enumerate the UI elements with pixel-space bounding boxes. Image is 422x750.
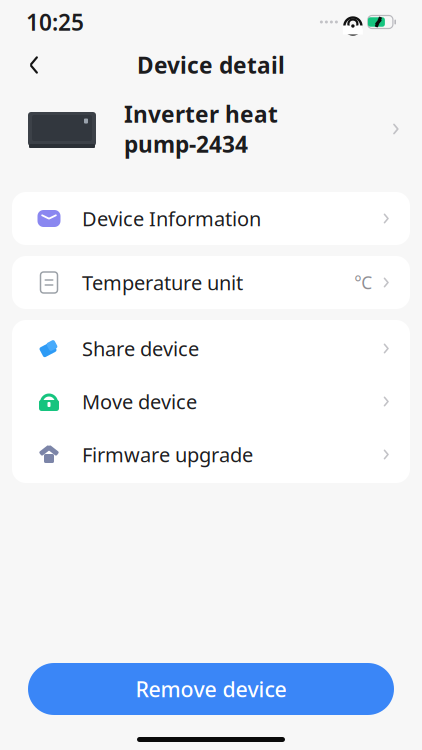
button[interactable]: Remove device (28, 663, 394, 715)
button[interactable]: Share device (12, 322, 410, 375)
staticText: Remove device (135, 675, 286, 703)
staticText: Share device (82, 335, 199, 362)
staticText: Device detail (137, 50, 285, 80)
button[interactable]: Firmware upgrade (12, 428, 410, 481)
button[interactable]: Back (12, 46, 56, 84)
button[interactable]: Device Information (12, 192, 410, 245)
staticText: 10:25 (26, 7, 84, 37)
button[interactable]: Inverter heat pump-2434 (0, 98, 422, 160)
staticText: Device Information (82, 205, 261, 232)
staticText: °C (354, 271, 372, 294)
staticText: Firmware upgrade (82, 441, 253, 468)
button[interactable]: Temperature unit (12, 256, 410, 309)
button[interactable]: Move device (12, 375, 410, 428)
staticText: Temperature unit (82, 269, 243, 296)
staticText: Move device (82, 388, 197, 415)
staticText: Inverter heat pump-2434 (124, 99, 278, 159)
